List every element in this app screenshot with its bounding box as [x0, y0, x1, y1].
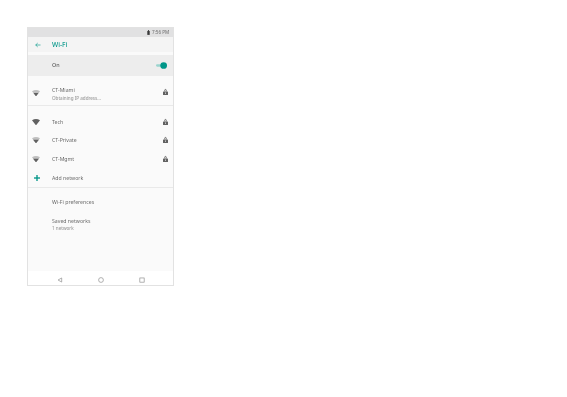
- staticText: Wi-Fi: [52, 40, 68, 49]
- button[interactable]: CT-Private: [27, 130, 174, 149]
- button[interactable]: Add network: [27, 168, 174, 187]
- staticText: Add network: [52, 174, 84, 181]
- staticText: On: [52, 61, 60, 68]
- button[interactable]: Recent apps: [136, 274, 148, 286]
- button[interactable]: Wi-Fi preferences: [27, 192, 174, 211]
- staticText: Saved networks: [52, 217, 91, 224]
- staticText: Tech: [52, 118, 64, 125]
- staticText: 1 network: [52, 225, 74, 231]
- button[interactable]: On: [27, 55, 174, 76]
- staticText: CT-Private: [52, 136, 77, 143]
- button[interactable]: Home: [95, 274, 107, 286]
- button[interactable]: Saved networks: [27, 212, 174, 235]
- button[interactable]: Back: [54, 274, 66, 286]
- staticText: Wi-Fi preferences: [52, 198, 95, 205]
- staticText: CT-Miami: [52, 86, 75, 93]
- button[interactable]: Tech: [27, 112, 174, 131]
- button[interactable]: CT-Miami: [27, 76, 174, 105]
- staticText: Obtaining IP address…: [52, 95, 101, 101]
- button[interactable]: CT-Mgmt: [27, 149, 174, 168]
- staticText: CT-Mgmt: [52, 155, 75, 162]
- staticText: 7:56 PM: [152, 29, 170, 35]
- button[interactable]: Navigate up: [32, 39, 43, 50]
